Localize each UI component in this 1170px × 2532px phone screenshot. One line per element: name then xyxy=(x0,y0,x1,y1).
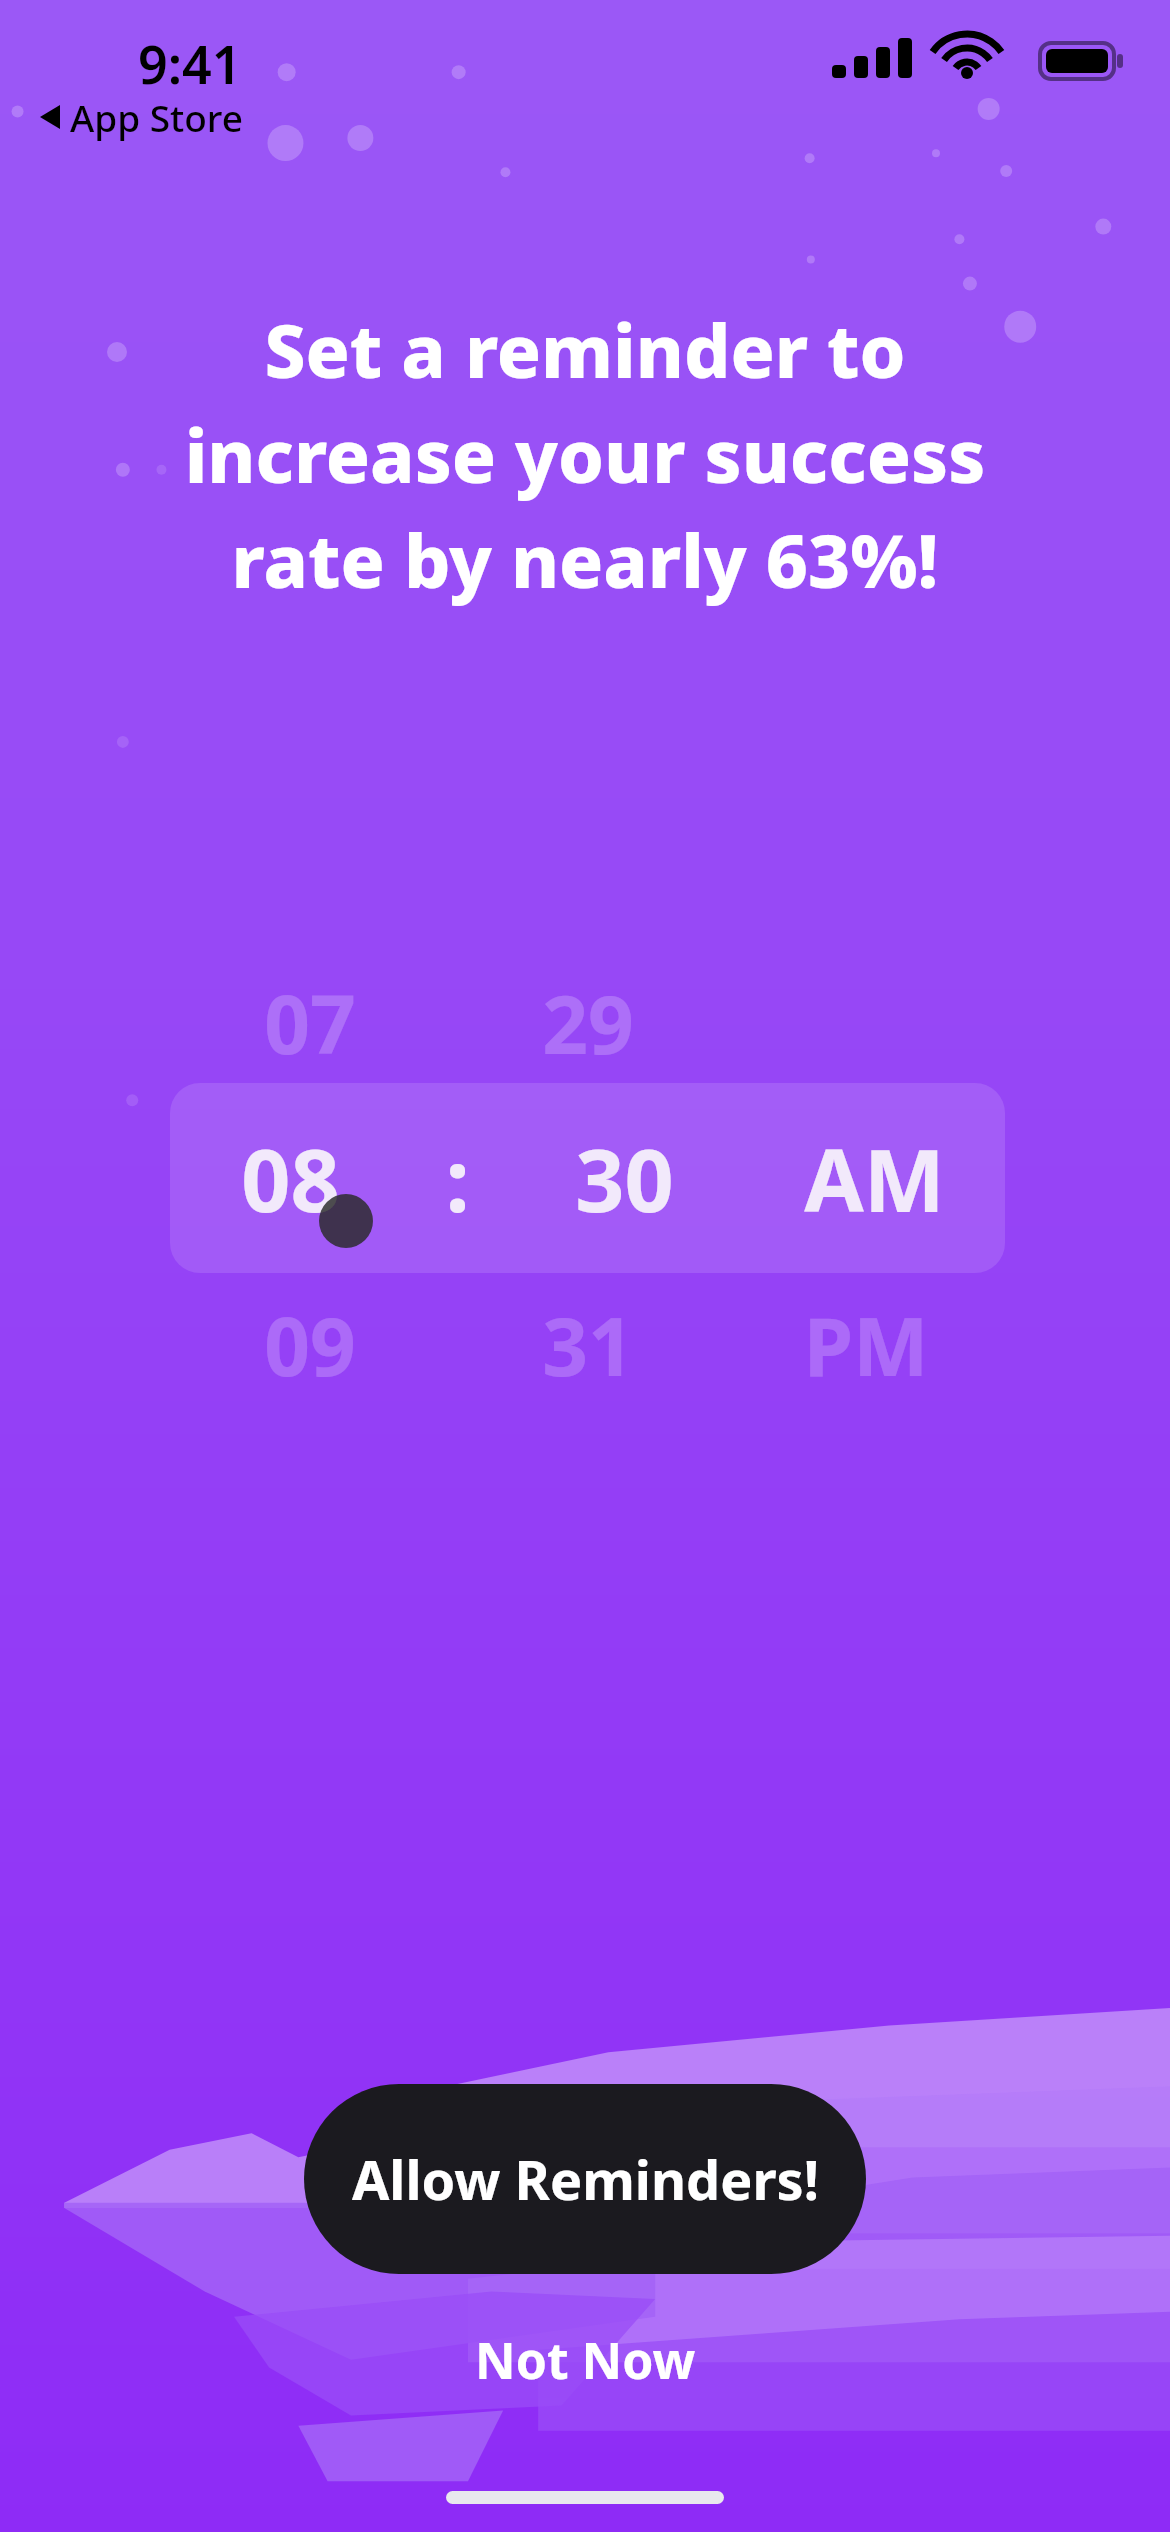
staticText: Set a reminder to increase your success … xyxy=(100,300,1070,610)
button[interactable]: 08 xyxy=(170,1083,1005,1273)
staticText: 09 xyxy=(264,1290,356,1399)
staticText: Allow Reminders! xyxy=(352,2142,819,2216)
staticText: PM xyxy=(803,1290,929,1399)
staticText: 07 xyxy=(264,968,356,1077)
staticText: Not Now xyxy=(475,2326,696,2394)
button[interactable]: Allow Reminders! xyxy=(304,2084,866,2274)
button[interactable]: Back to App Store xyxy=(40,92,244,142)
staticText: 29 xyxy=(542,968,634,1077)
staticText: 30 xyxy=(575,1120,674,1237)
staticText: 31 xyxy=(542,1290,634,1399)
staticText: App Store xyxy=(70,92,244,142)
staticText: 08 xyxy=(241,1120,340,1237)
staticText: 9:41 xyxy=(138,28,242,99)
staticText: AM xyxy=(804,1120,945,1237)
button[interactable]: Not Now xyxy=(435,2308,736,2412)
staticText: : xyxy=(445,1120,470,1237)
